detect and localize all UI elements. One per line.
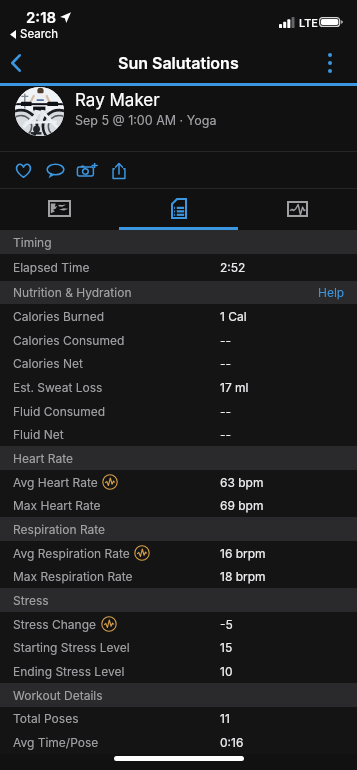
staticText: -5 [220, 617, 233, 632]
button[interactable]: Max Respiration Rate [0, 565, 357, 588]
staticText: 2:18 [26, 8, 57, 26]
button[interactable]: Total Poses [0, 707, 357, 730]
button[interactable]: Comment [39, 153, 71, 187]
staticText: Stress [13, 593, 49, 608]
staticText: Nutrition & Hydration [13, 285, 132, 300]
button[interactable]: Ray Maker [0, 86, 357, 151]
staticText: Fluid Consumed [13, 404, 106, 419]
button[interactable]: Share [103, 153, 135, 187]
staticText: Calories Burned [13, 309, 105, 324]
staticText: 16 brpm [220, 546, 266, 561]
staticText: Elapsed Time [13, 260, 90, 275]
staticText: -- [220, 404, 232, 419]
button[interactable]: Like [7, 153, 39, 187]
staticText: Heart Rate [13, 451, 73, 466]
button[interactable]: Add photo [71, 153, 103, 187]
staticText: Est. Sweat Loss [13, 380, 103, 395]
staticText: Sep 5 @ 1:00 AM · Yoga [75, 113, 217, 128]
staticText: 2:52 [220, 260, 246, 275]
staticText: 15 [220, 640, 233, 655]
button[interactable]: Avg Respiration Rate [0, 541, 357, 565]
staticText: Sun Salutations [118, 53, 239, 72]
button[interactable]: More options [310, 42, 350, 84]
staticText: Ending Stress Level [13, 664, 125, 679]
staticText: Avg Respiration Rate [13, 546, 130, 561]
staticText: Starting Stress Level [13, 640, 130, 655]
button[interactable]: Max Heart Rate [0, 494, 357, 517]
button[interactable]: Fluid Consumed [0, 399, 357, 423]
button[interactable]: Calories Consumed [0, 328, 357, 352]
button[interactable]: Calories Burned [0, 304, 357, 328]
staticText: Timing [13, 235, 52, 250]
staticText: Max Heart Rate [13, 498, 101, 513]
button[interactable]: Fluid Net [0, 423, 357, 446]
staticText: Ray Maker [75, 90, 160, 111]
button[interactable]: Calories Net [0, 352, 357, 375]
staticText: Workout Details [13, 688, 103, 703]
staticText: Respiration Rate [13, 522, 106, 537]
staticText: Stress Change [13, 617, 97, 632]
staticText: Total Poses [13, 711, 79, 726]
staticText: 11 [220, 711, 230, 726]
staticText: Fluid Net [13, 427, 64, 442]
staticText: -- [220, 333, 232, 348]
button[interactable]: Help [302, 281, 357, 304]
staticText: -- [220, 427, 232, 442]
button[interactable]: Map [0, 189, 119, 230]
staticText: 17 ml [220, 380, 249, 395]
staticText: Max Respiration Rate [13, 569, 133, 584]
button[interactable]: Details [119, 189, 238, 230]
button[interactable]: Starting Stress Level [0, 636, 357, 659]
button[interactable]: Avg Heart Rate [0, 470, 357, 494]
staticText: Avg Time/Pose [13, 735, 99, 750]
staticText: 18 brpm [220, 569, 266, 584]
staticText: 63 bpm [220, 475, 264, 490]
staticText: LTE [299, 16, 318, 29]
button[interactable]: Elapsed Time [0, 254, 357, 281]
button[interactable]: Charts [238, 189, 357, 230]
staticText: Calories Consumed [13, 333, 125, 348]
staticText: 0:16 [220, 735, 244, 750]
staticText: 69 bpm [220, 498, 264, 513]
staticText: Help [318, 285, 345, 300]
staticText: Avg Heart Rate [13, 475, 98, 490]
button[interactable]: Stress Change [0, 612, 357, 636]
button[interactable]: Est. Sweat Loss [0, 375, 357, 399]
button[interactable]: Back [0, 42, 32, 84]
staticText: Search [20, 27, 59, 41]
button[interactable]: Avg Time/Pose [0, 730, 357, 754]
staticText: 10 [220, 664, 233, 679]
staticText: 1 Cal [220, 309, 247, 324]
button[interactable]: Ending Stress Level [0, 659, 357, 683]
staticText: -- [220, 356, 232, 371]
staticText: Calories Net [13, 356, 83, 371]
